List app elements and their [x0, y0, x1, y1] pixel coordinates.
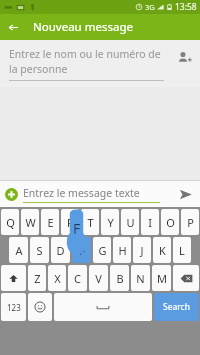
button[interactable]: U: [121, 209, 139, 235]
staticText: Search: [163, 301, 190, 313]
staticText: J: [140, 243, 144, 258]
button[interactable]: Send: [170, 181, 200, 207]
staticText: V: [95, 271, 102, 286]
staticText: P: [187, 215, 194, 230]
staticText: 123: [7, 302, 21, 313]
staticText: K: [159, 243, 166, 258]
button[interactable]: F: [72, 237, 91, 263]
button[interactable]: K: [153, 237, 171, 263]
button[interactable]: N: [131, 265, 150, 291]
button[interactable]: A: [9, 237, 28, 263]
button[interactable]: Back: [0, 14, 26, 40]
button[interactable]: X: [48, 265, 66, 291]
button[interactable]: Add recipient: [171, 44, 197, 70]
button[interactable]: Emoji: [28, 293, 52, 321]
button[interactable]: Backspace: [173, 265, 199, 291]
button[interactable]: H: [113, 237, 131, 263]
staticText: G: [98, 243, 107, 258]
staticText: I: [148, 215, 152, 230]
staticText: W: [25, 215, 36, 230]
button[interactable]: Z: [28, 265, 46, 291]
button[interactable]: S: [30, 237, 49, 263]
button[interactable]: D: [51, 237, 70, 263]
staticText: A: [15, 243, 23, 258]
button[interactable]: E: [41, 209, 59, 235]
button[interactable]: 123: [1, 293, 26, 321]
staticText: Entrez le message texte: [23, 186, 140, 200]
staticText: Z: [34, 271, 41, 286]
staticText: la personne: [9, 62, 68, 76]
button[interactable]: J: [133, 237, 151, 263]
staticText: 3G: [145, 2, 155, 12]
staticText: X: [54, 271, 61, 286]
staticText: R: [67, 215, 74, 230]
button[interactable]: V: [89, 265, 108, 291]
staticText: Entrez le nom ou le numéro de: [9, 47, 161, 61]
staticText: L: [179, 243, 185, 258]
staticText: M: [157, 271, 167, 286]
button[interactable]: G: [93, 237, 111, 263]
button[interactable]: C: [68, 265, 87, 291]
button[interactable]: I: [141, 209, 159, 235]
button[interactable]: L: [173, 237, 191, 263]
button[interactable]: B: [110, 265, 129, 291]
staticText: D: [56, 243, 65, 258]
button[interactable]: Shift: [1, 265, 26, 291]
button[interactable]: O: [161, 209, 179, 235]
button[interactable]: M: [152, 265, 171, 291]
staticText: H: [118, 243, 127, 258]
staticText: Y: [107, 215, 114, 230]
staticText: B: [116, 271, 124, 286]
staticText: F: [73, 219, 81, 238]
staticText: Q: [6, 215, 15, 230]
button[interactable]: Space: [54, 293, 152, 321]
staticText: T: [87, 215, 94, 230]
button[interactable]: T: [81, 209, 99, 235]
staticText: E: [47, 215, 54, 230]
button[interactable]: P: [181, 209, 199, 235]
staticText: 13:58: [175, 1, 197, 13]
staticText: C: [74, 271, 81, 286]
staticText: Nouveau message: [33, 19, 133, 35]
staticText: O: [166, 215, 175, 230]
staticText: U: [126, 215, 135, 230]
button[interactable]: Add attachment: [0, 183, 22, 205]
staticText: N: [136, 271, 145, 286]
staticText: S: [36, 243, 43, 258]
button[interactable]: Y: [101, 209, 119, 235]
button[interactable]: Search: [154, 293, 199, 321]
staticText: F: [79, 243, 85, 258]
button[interactable]: R: [61, 209, 79, 235]
button[interactable]: W: [21, 209, 39, 235]
button[interactable]: Q: [1, 209, 19, 235]
